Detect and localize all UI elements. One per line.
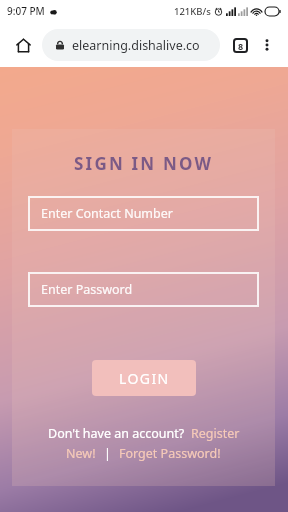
staticText: 121KB/s [174,5,211,18]
staticText: Don't have an account? [48,425,185,442]
button[interactable]: Register [191,425,240,442]
staticText: Forget Password! [119,445,221,462]
button[interactable]: elearning.dishalive.com [42,29,220,61]
staticText: Register [191,425,240,442]
staticText: SIGN IN NOW [74,152,214,175]
staticText: elearning.dishalive.com [72,37,210,54]
staticText: Enter Contact Number [41,205,173,222]
staticText: | [104,445,111,462]
staticText: 9:07 PM [7,4,45,18]
staticText: LOGIN [119,369,170,388]
button[interactable]: Forget Password! [119,445,221,462]
staticText: 8 [238,40,244,52]
button[interactable]: Tabs [226,31,254,59]
button[interactable]: Enter Password [28,272,259,307]
button[interactable]: New! [66,445,96,462]
button[interactable]: More options [254,32,280,58]
staticText: New! [66,445,96,462]
staticText: Enter Password [41,281,133,298]
button[interactable]: LOGIN [92,360,196,396]
button[interactable]: Home [8,30,38,60]
button[interactable]: Enter Contact Number [28,196,259,231]
